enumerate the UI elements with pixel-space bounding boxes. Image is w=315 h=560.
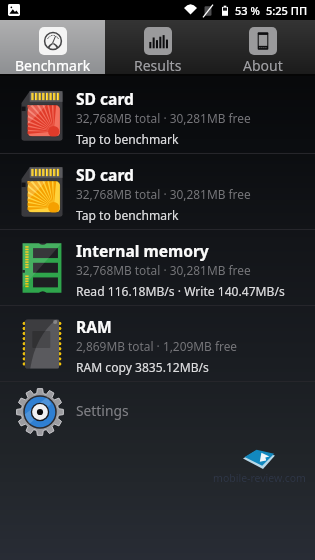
button[interactable]: Settings (0, 382, 315, 444)
staticText: RAM (76, 316, 112, 337)
staticText: SD card (76, 164, 134, 185)
staticText: About (243, 56, 283, 75)
staticText: 32,768MB total · 30,281MB free (76, 110, 251, 126)
staticText: 32,768MB total · 30,281MB free (76, 262, 251, 278)
staticText: 2,869MB total · 1,209MB free (76, 338, 238, 354)
button[interactable]: Results (105, 20, 210, 76)
staticText: Tap to benchmark (76, 131, 179, 147)
button[interactable]: SD card (0, 78, 315, 153)
staticText: Read 116.18MB/s · Write 140.47MB/s (76, 283, 285, 299)
staticText: Results (134, 56, 182, 75)
staticText: 5:25 ПП (266, 3, 308, 18)
staticText: Benchmark (15, 56, 91, 75)
staticText: 32,768MB total · 30,281MB free (76, 186, 251, 202)
staticText: 53 % (235, 3, 260, 18)
staticText: RAM copy 3835.12MB/s (76, 359, 209, 375)
staticText: Settings (76, 401, 129, 420)
button[interactable]: SD card (0, 154, 315, 229)
staticText: Tap to benchmark (76, 207, 179, 223)
staticText: Internal memory (76, 240, 209, 261)
staticText: mobile-review.com (213, 471, 306, 485)
staticText: SD card (76, 88, 134, 109)
button[interactable]: About (210, 20, 315, 76)
button[interactable]: RAM (0, 306, 315, 381)
button[interactable]: Benchmark (0, 20, 105, 76)
button[interactable]: Internal memory (0, 230, 315, 305)
